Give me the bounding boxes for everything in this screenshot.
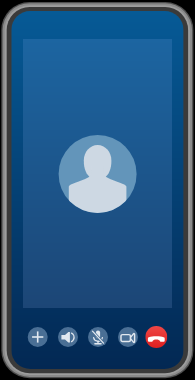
- button[interactable]: Add call: [28, 327, 48, 347]
- button[interactable]: Speaker: [58, 327, 78, 347]
- button[interactable]: End call: [145, 326, 167, 348]
- button[interactable]: Turn off camera: [118, 327, 138, 347]
- button[interactable]: Mute microphone: [88, 327, 108, 347]
